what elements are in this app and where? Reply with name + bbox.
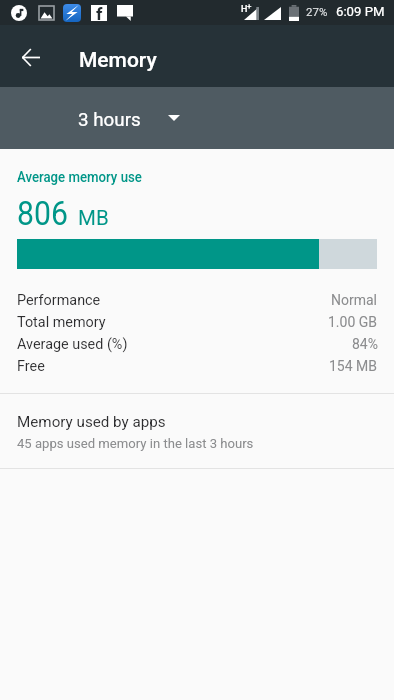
staticText: Memory [79, 48, 157, 73]
staticText: 84% [352, 336, 378, 352]
staticText: H [241, 4, 248, 15]
staticText: 3 hours [78, 109, 141, 131]
staticText: Average used (%) [17, 336, 128, 353]
staticText: MB [78, 206, 109, 230]
button[interactable]: Navigate up [6, 26, 56, 88]
staticText: 1.00 GB [328, 314, 378, 330]
staticText: 27% [306, 5, 328, 18]
staticText: f [96, 4, 103, 20]
staticText: Free [17, 358, 45, 375]
staticText: + [247, 2, 252, 11]
staticText: 6:09 PM [336, 4, 385, 19]
staticText: Memory used by apps [17, 413, 166, 431]
button[interactable]: Memory used by apps [0, 394, 394, 465]
staticText: 154 MB [329, 358, 378, 374]
staticText: Performance [17, 292, 101, 309]
button[interactable]: 3 hours [78, 89, 180, 151]
staticText: Average memory use [17, 169, 142, 186]
staticText: Normal [331, 292, 378, 308]
staticText: 45 apps used memory in the last 3 hours [17, 436, 254, 451]
staticText: Total memory [17, 314, 106, 331]
staticText: 806 [17, 194, 68, 233]
